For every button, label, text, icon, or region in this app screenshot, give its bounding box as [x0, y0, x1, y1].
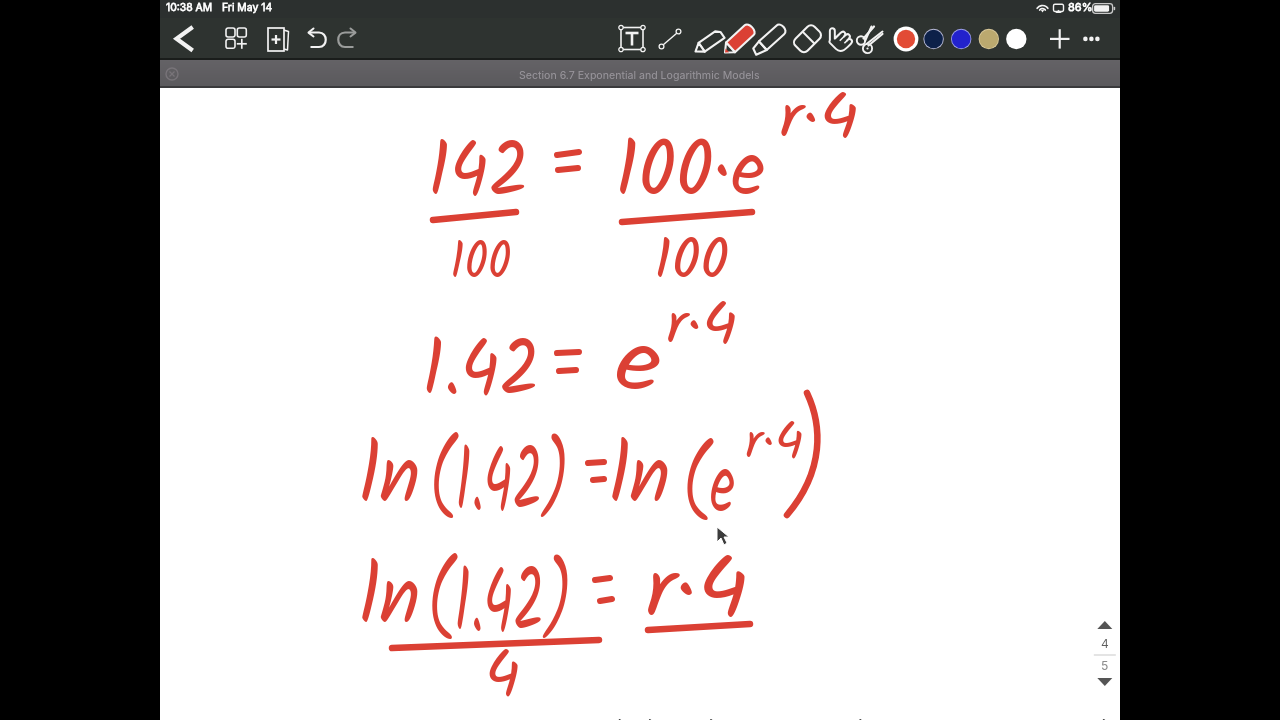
staticText: 4: [485, 627, 521, 720]
button[interactable]: Undo: [302, 20, 334, 58]
button[interactable]: Pen tool: [720, 20, 754, 58]
button[interactable]: Page 5: [1092, 658, 1118, 680]
button[interactable]: Redo: [336, 20, 368, 58]
button[interactable]: White colour: [1005, 28, 1027, 50]
staticText: How to compute a model what is the amoun…: [164, 707, 1280, 720]
button[interactable]: Back: [168, 20, 200, 58]
staticText: ln: [360, 415, 421, 546]
button[interactable]: Page 4: [1092, 636, 1118, 658]
staticText: r·4: [666, 281, 737, 373]
button[interactable]: Close note: [166, 64, 186, 84]
staticText: (e: [683, 423, 735, 557]
staticText: (1.42): [428, 536, 572, 676]
staticText: Section 6.7 Exponential and Logarithmic …: [519, 69, 760, 82]
staticText: r·4: [779, 71, 859, 170]
staticText: e: [615, 299, 662, 436]
staticText: ln: [360, 536, 421, 667]
button[interactable]: Blue colour: [949, 28, 971, 50]
staticText: 4: [1101, 636, 1109, 651]
button[interactable]: Eraser tool: [792, 20, 824, 58]
button[interactable]: More options: [1078, 24, 1106, 54]
staticText: 86%: [1068, 0, 1093, 13]
staticText: 100: [450, 222, 512, 306]
button[interactable]: Library: [222, 20, 252, 58]
button[interactable]: Line tool: [654, 20, 686, 58]
staticText: 142: [428, 114, 529, 235]
button[interactable]: Lasso tool: [824, 20, 854, 58]
button[interactable]: Navy colour: [921, 28, 943, 50]
staticText: Fri May 14: [222, 1, 273, 14]
button[interactable]: Highlighter tool: [754, 20, 786, 58]
button[interactable]: Previous page: [1092, 614, 1118, 636]
staticText: r·4: [645, 527, 748, 661]
button[interactable]: Text box tool: [616, 20, 648, 58]
button[interactable]: Red colour: [893, 26, 919, 52]
staticText: 100·e: [615, 112, 766, 236]
staticText: r·4: [745, 405, 804, 485]
staticText: 5: [1101, 658, 1109, 673]
staticText: (1.42): [430, 415, 569, 555]
button[interactable]: Next page: [1092, 674, 1118, 694]
staticText: 10:38 AM: [166, 1, 213, 14]
staticText: 1.42: [422, 311, 541, 435]
staticText: ln: [610, 415, 671, 546]
button[interactable]: Add: [1046, 24, 1074, 54]
button[interactable]: Cut tool: [856, 20, 886, 58]
button[interactable]: Tan colour: [977, 28, 999, 50]
staticText: 100: [654, 217, 729, 308]
button[interactable]: New page: [262, 20, 294, 58]
button[interactable]: Pencil tool: [690, 20, 722, 58]
